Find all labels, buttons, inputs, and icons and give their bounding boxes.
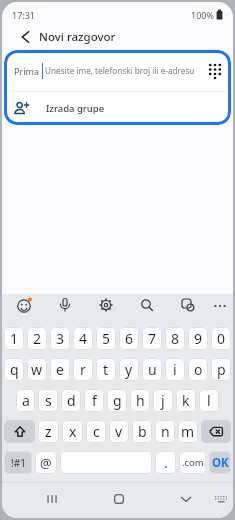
staticText: f [92, 391, 97, 410]
button[interactable]: y [119, 358, 139, 381]
button[interactable] [98, 297, 114, 313]
button[interactable]: 7 [142, 327, 162, 350]
button[interactable] [16, 297, 32, 313]
button[interactable] [180, 297, 196, 313]
staticText: r [80, 360, 86, 379]
button[interactable] [201, 420, 231, 443]
button[interactable]: 9 [188, 327, 208, 350]
staticText: m [181, 422, 195, 441]
button[interactable]: . [155, 451, 176, 474]
button[interactable]: h [130, 389, 150, 412]
button[interactable]: f [84, 389, 104, 412]
staticText: y [125, 360, 133, 379]
button[interactable] [4, 420, 35, 443]
staticText: 4 [79, 329, 88, 348]
staticText: s [45, 391, 52, 410]
staticText: Novi razgovor [39, 29, 116, 45]
button[interactable]: x [62, 420, 83, 443]
button[interactable]: i [165, 358, 185, 381]
staticText: u [148, 360, 157, 379]
button[interactable]: g [107, 389, 127, 412]
button[interactable]: Izrada grupe [4, 92, 231, 125]
button[interactable]: p [211, 358, 231, 381]
staticText: 7 [148, 329, 157, 348]
button[interactable]: u [142, 358, 162, 381]
button[interactable]: !#1 [4, 451, 32, 474]
button[interactable]: 6 [119, 327, 139, 350]
staticText: 1 [10, 329, 19, 348]
button[interactable]: j [153, 389, 173, 412]
staticText: 6 [125, 329, 134, 348]
button[interactable] [57, 297, 73, 313]
staticText: k [182, 391, 190, 410]
staticText: 3 [56, 329, 65, 348]
button[interactable]: m [178, 420, 198, 443]
staticText: v [115, 422, 123, 441]
button[interactable]: OK [209, 451, 231, 474]
staticText: e [56, 360, 64, 379]
staticText: . [164, 453, 168, 472]
button[interactable] [208, 62, 222, 79]
button[interactable] [60, 451, 152, 474]
staticText: 17:31 [12, 9, 36, 21]
button[interactable] [112, 492, 126, 506]
staticText: Prima [14, 65, 39, 77]
staticText: c [93, 422, 100, 441]
button[interactable]: @ [35, 451, 57, 474]
button[interactable]: t [96, 358, 116, 381]
button[interactable]: e [50, 358, 70, 381]
staticText: z [45, 422, 52, 441]
button[interactable]: 1 [4, 327, 24, 350]
staticText: 0 [217, 329, 226, 348]
staticText: @ [40, 454, 52, 472]
button[interactable]: 0 [211, 327, 231, 350]
staticText: OK [212, 455, 229, 471]
button[interactable]: c [86, 420, 106, 443]
button[interactable]: a [16, 389, 35, 412]
button[interactable]: 2 [27, 327, 47, 350]
button[interactable]: Prima [4, 50, 231, 91]
button[interactable]: 5 [96, 327, 116, 350]
button[interactable]: n [155, 420, 175, 443]
staticText: o [194, 360, 203, 379]
button[interactable]: b [132, 420, 152, 443]
staticText: i [173, 360, 177, 379]
button[interactable]: l [199, 389, 219, 412]
button[interactable]: r [73, 358, 93, 381]
button[interactable]: s [38, 389, 58, 412]
staticText: a [22, 391, 30, 410]
staticText: .com [182, 456, 204, 469]
button[interactable]: w [27, 358, 47, 381]
staticText: x [69, 422, 77, 441]
staticText: 100% [191, 9, 214, 21]
staticText: !#1 [11, 456, 26, 470]
staticText: h [136, 391, 145, 410]
staticText: Izrada grupe [46, 102, 105, 115]
button[interactable]: 3 [50, 327, 70, 350]
button[interactable]: z [38, 420, 59, 443]
button[interactable] [212, 297, 228, 313]
button[interactable]: k [176, 389, 196, 412]
button[interactable]: d [61, 389, 81, 412]
button[interactable]: 4 [73, 327, 93, 350]
button[interactable]: o [188, 358, 208, 381]
staticText: q [10, 360, 19, 379]
staticText: w [31, 360, 43, 379]
button[interactable] [214, 495, 229, 505]
button[interactable]: 8 [165, 327, 185, 350]
button[interactable] [139, 297, 155, 313]
staticText: p [217, 360, 226, 379]
staticText: 2 [33, 329, 42, 348]
button[interactable] [179, 492, 193, 506]
button[interactable]: .com [179, 451, 206, 474]
staticText: 5 [102, 329, 111, 348]
staticText: 8 [171, 329, 180, 348]
staticText: b [138, 422, 147, 441]
staticText: 9 [194, 329, 203, 348]
button[interactable]: v [109, 420, 129, 443]
button[interactable] [15, 27, 35, 47]
staticText: t [103, 360, 109, 379]
button[interactable]: q [4, 358, 24, 381]
staticText: Unesite ime, telefonski broj ili e-adres… [45, 65, 204, 76]
button[interactable] [45, 492, 59, 506]
